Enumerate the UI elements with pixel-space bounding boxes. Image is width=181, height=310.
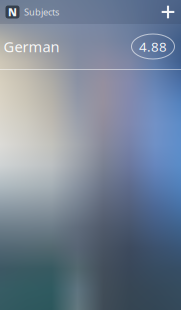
staticText: 4.88: [139, 38, 167, 55]
staticText: Subjects: [24, 6, 59, 18]
button[interactable]: N: [0, 1, 59, 22]
staticText: N: [8, 5, 17, 19]
button[interactable]: German: [0, 24, 181, 69]
staticText: German: [3, 37, 59, 56]
button[interactable]: Add subject: [155, 0, 181, 24]
